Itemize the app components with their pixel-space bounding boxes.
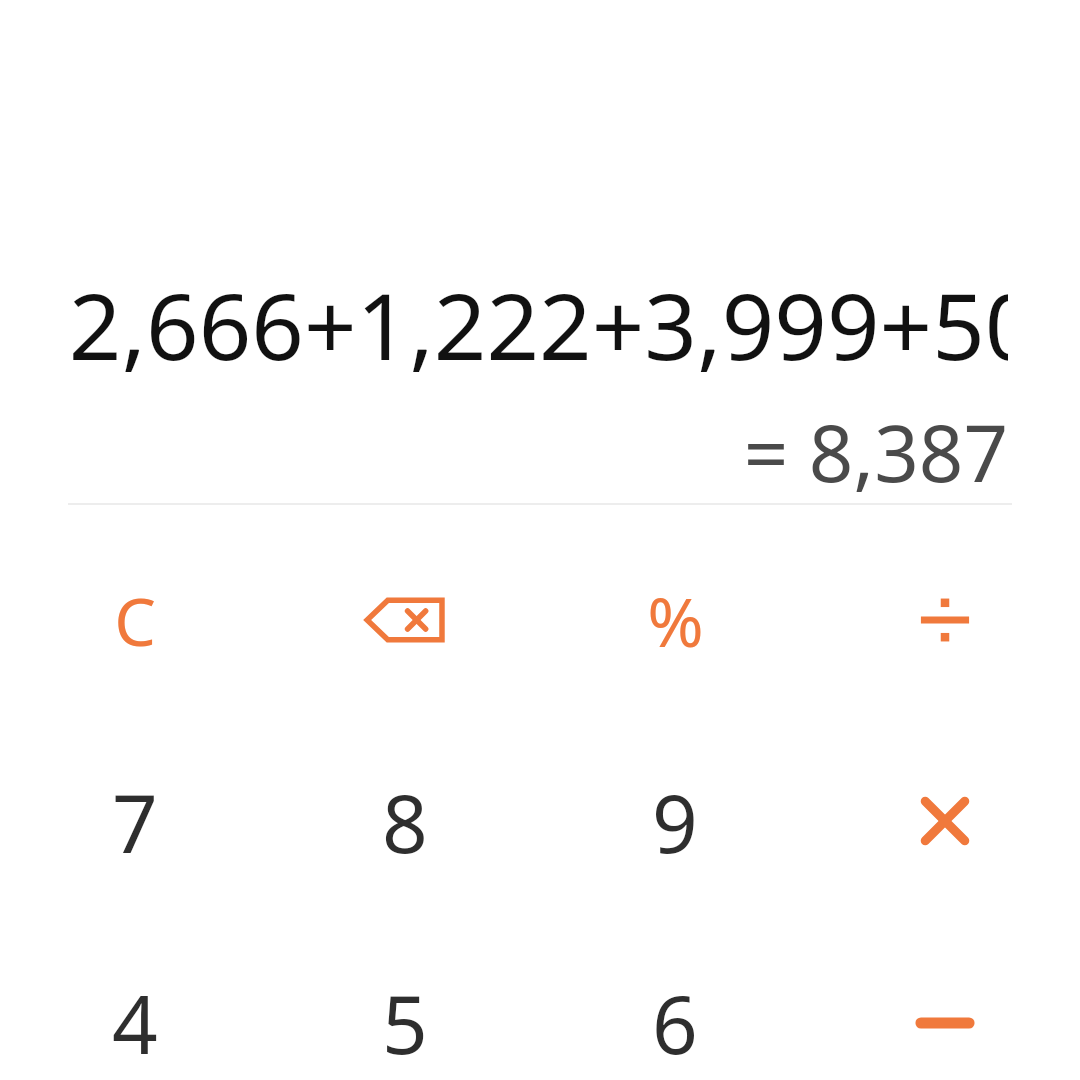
staticText: % [647, 574, 704, 667]
button[interactable]: Subtract [810, 965, 1080, 1080]
staticText: 9 [652, 767, 698, 876]
button[interactable]: 4 [0, 965, 270, 1080]
button[interactable]: Backspace [270, 562, 540, 678]
staticText: = 8,387 [68, 399, 1008, 505]
button[interactable]: 7 [0, 763, 270, 879]
staticText: 7 [112, 767, 158, 876]
staticText: C [114, 575, 156, 665]
staticText: 6 [652, 968, 698, 1077]
button[interactable]: 6 [540, 965, 810, 1080]
button[interactable]: 9 [540, 763, 810, 879]
staticText: 2,666+1,222+3,999+500 [68, 262, 1008, 387]
button[interactable]: 5 [270, 965, 540, 1080]
staticText: 4 [112, 968, 158, 1077]
button[interactable]: C [0, 562, 270, 678]
button[interactable]: Divide [810, 562, 1080, 678]
staticText: 8 [382, 767, 428, 876]
staticText: 5 [382, 968, 428, 1077]
button[interactable]: Multiply [810, 763, 1080, 879]
button[interactable]: % [540, 562, 810, 678]
button[interactable]: 8 [270, 763, 540, 879]
